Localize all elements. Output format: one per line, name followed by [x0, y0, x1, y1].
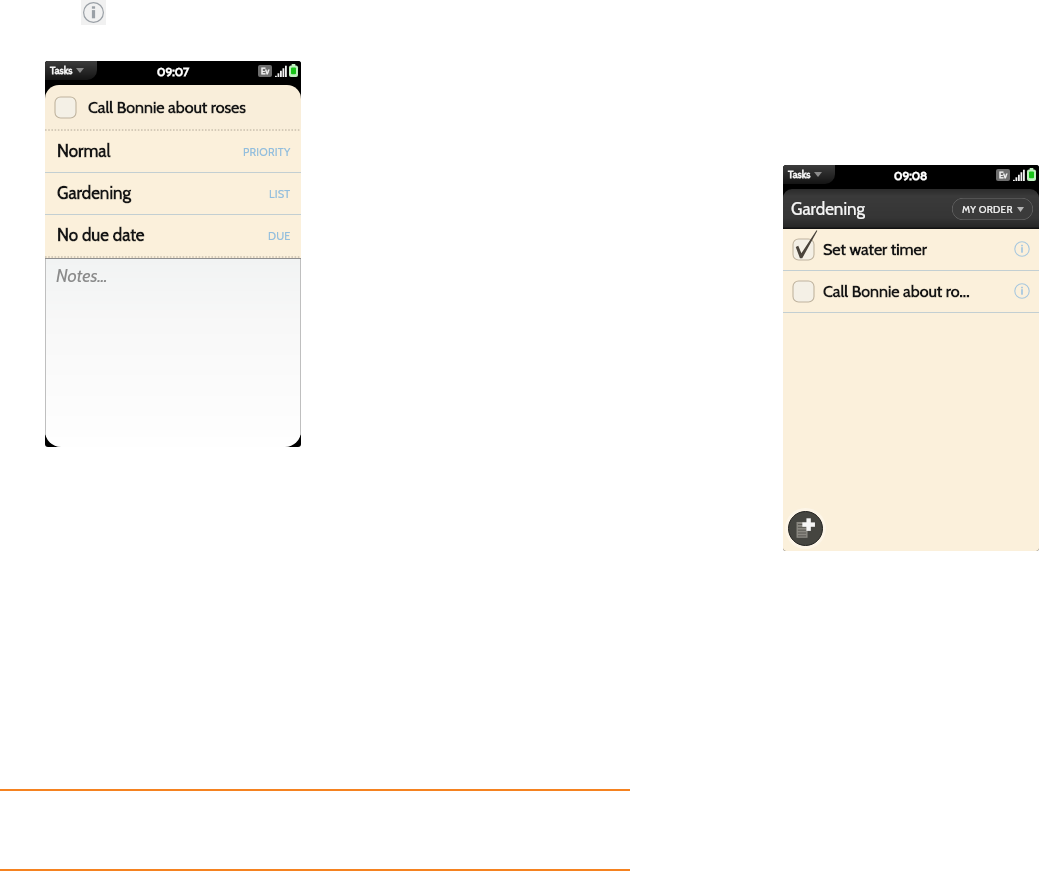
staticText: Normal — [57, 141, 111, 162]
staticText: Tasks — [788, 168, 811, 180]
staticText: Call Bonnie about roses — [88, 98, 246, 117]
button[interactable]: Set water timer — [793, 229, 1030, 270]
button[interactable]: MY ORDER — [952, 198, 1033, 220]
staticText: Call Bonnie about ro... — [823, 282, 970, 301]
staticText: 09:07 — [157, 64, 189, 79]
button[interactable]: Task details — [1014, 241, 1030, 257]
staticText: MY ORDER — [962, 203, 1013, 215]
staticText: Gardening — [791, 199, 865, 220]
button[interactable]: Call Bonnie about roses — [45, 85, 301, 129]
staticText: DUE — [268, 229, 291, 242]
staticText: LIST — [269, 187, 291, 200]
staticText: No due date — [57, 225, 145, 246]
button[interactable]: Tasks — [45, 61, 97, 80]
staticText: Ev — [999, 170, 1008, 180]
staticText: PRIORITY — [243, 145, 291, 158]
staticText: Gardening — [57, 183, 131, 204]
button[interactable]: Tasks — [783, 165, 835, 184]
button[interactable]: Call Bonnie about ro... — [793, 271, 1030, 312]
staticText: Set water timer — [823, 240, 927, 259]
button[interactable]: Notes... — [45, 258, 301, 447]
staticText: Tasks — [50, 64, 73, 76]
button[interactable]: Information — [81, 0, 106, 25]
staticText: Notes... — [56, 265, 108, 287]
staticText: Ev — [261, 66, 270, 76]
button[interactable]: Normal — [57, 131, 291, 172]
button[interactable]: Task details — [1014, 283, 1030, 299]
button[interactable]: No due date — [57, 215, 291, 256]
button[interactable]: Gardening — [57, 173, 291, 214]
button[interactable]: New task — [785, 508, 826, 549]
staticText: 09:08 — [894, 168, 928, 183]
